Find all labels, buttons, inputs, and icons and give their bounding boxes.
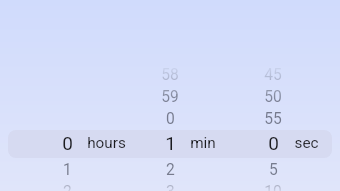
staticText: 5 [269, 161, 278, 179]
staticText: 55 [264, 110, 282, 128]
staticText: 0 [166, 110, 175, 128]
staticText: 10 [264, 183, 282, 191]
staticText: 1 [63, 161, 72, 179]
staticText: 1 [165, 132, 176, 154]
staticText: sec [294, 134, 319, 152]
button[interactable]: hours [61, 129, 151, 157]
staticText: 2 [63, 183, 72, 191]
staticText: min [190, 134, 216, 152]
staticText: 45 [264, 66, 282, 84]
staticText: 59 [161, 88, 179, 106]
staticText: 0 [62, 132, 73, 154]
button[interactable]: seconds [261, 129, 340, 157]
staticText: 2 [166, 161, 175, 179]
staticText: 50 [264, 88, 282, 106]
staticText: 3 [166, 183, 175, 191]
staticText: 0 [268, 132, 279, 154]
staticText: hours [87, 134, 126, 152]
button[interactable]: minutes [158, 129, 248, 157]
button[interactable] [8, 130, 332, 158]
staticText: 58 [161, 66, 179, 84]
